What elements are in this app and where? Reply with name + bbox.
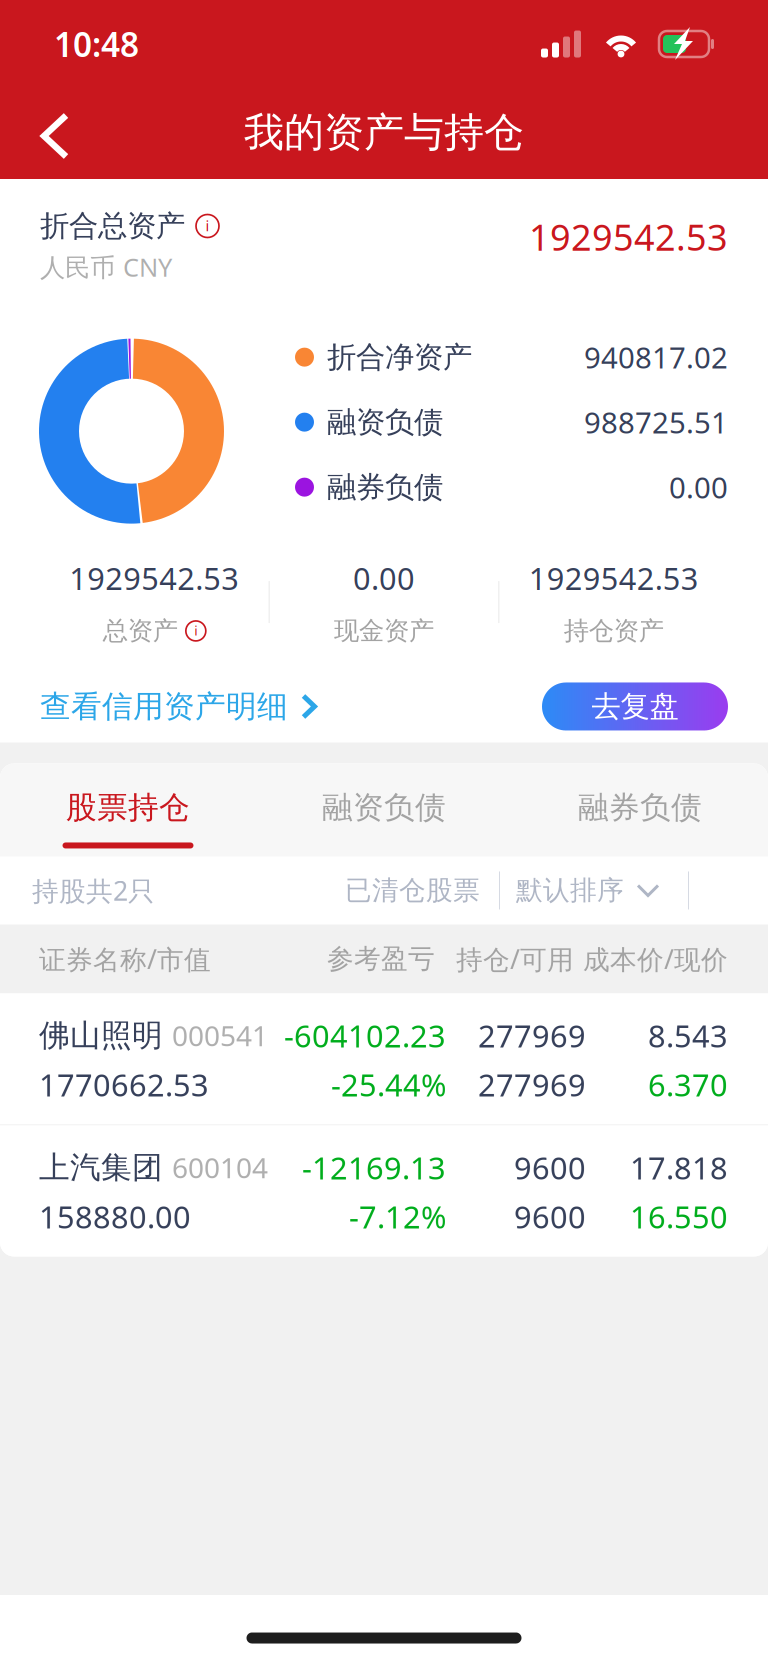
- staticText: 佛山照明: [39, 1017, 163, 1054]
- staticText: 成本价/现价: [583, 941, 728, 977]
- staticText: 折合总资产: [40, 208, 185, 244]
- button[interactable]: 查看信用资产明细: [40, 678, 317, 734]
- staticText: -25.44%: [331, 1064, 446, 1105]
- staticText: 0.00: [353, 558, 415, 598]
- staticText: 0.00: [669, 468, 728, 507]
- staticText: 1770662.53: [39, 1064, 209, 1105]
- staticText: i: [205, 216, 209, 235]
- staticText: 股票持仓: [66, 789, 190, 826]
- staticText: 000541: [172, 1017, 268, 1054]
- staticText: 10:48: [54, 22, 139, 66]
- staticText: 去复盘: [591, 688, 678, 724]
- staticText: 人民币 CNY: [40, 250, 172, 284]
- staticText: 总资产: [103, 615, 178, 646]
- staticText: 折合净资产: [327, 339, 472, 375]
- staticText: 158880.00: [39, 1196, 191, 1237]
- staticText: 融券负债: [327, 469, 443, 505]
- staticText: 277969: [478, 1064, 586, 1105]
- staticText: 1929542.53: [529, 213, 728, 261]
- staticText: 持仓资产: [564, 615, 664, 646]
- button[interactable]: 股票持仓: [0, 763, 256, 856]
- staticText: 现金资产: [334, 615, 434, 646]
- staticText: 1929542.53: [69, 558, 239, 598]
- staticText: 我的资产与持仓: [244, 108, 524, 157]
- staticText: 16.550: [630, 1196, 728, 1237]
- staticText: 默认排序: [516, 874, 624, 907]
- staticText: 17.818: [630, 1147, 728, 1188]
- staticText: 940817.02: [584, 338, 728, 377]
- button[interactable]: 去复盘: [542, 682, 728, 730]
- staticText: 上汽集团: [39, 1149, 163, 1186]
- button[interactable]: Back: [17, 99, 93, 173]
- staticText: 9600: [514, 1147, 586, 1188]
- staticText: 证券名称/市值: [39, 941, 211, 977]
- staticText: -12169.13: [302, 1147, 446, 1188]
- staticText: i: [194, 622, 197, 639]
- staticText: 6.370: [648, 1064, 728, 1105]
- button[interactable]: 融资负债: [256, 763, 512, 856]
- staticText: 600104: [172, 1149, 268, 1186]
- staticText: 查看信用资产明细: [40, 688, 288, 725]
- staticText: 已清仓股票: [345, 874, 480, 907]
- staticText: 融券负债: [578, 789, 702, 826]
- staticText: 9600: [514, 1196, 586, 1237]
- button[interactable]: 融券负债: [512, 763, 768, 856]
- staticText: 融资负债: [327, 404, 443, 440]
- staticText: 融资负债: [322, 789, 446, 826]
- staticText: 参考盈亏: [327, 943, 435, 975]
- button[interactable]: 默认排序: [516, 859, 660, 921]
- button[interactable]: 已清仓股票: [345, 859, 480, 921]
- staticText: 持仓/可用: [456, 941, 574, 977]
- staticText: -7.12%: [349, 1196, 446, 1237]
- button[interactable]: 上汽集团: [0, 1125, 768, 1256]
- staticText: 1929542.53: [529, 558, 699, 598]
- staticText: 988725.51: [584, 403, 728, 442]
- button[interactable]: 佛山照明: [0, 993, 768, 1124]
- staticText: 277969: [478, 1015, 586, 1056]
- staticText: 持股共2只: [32, 873, 155, 908]
- staticText: 8.543: [648, 1015, 728, 1056]
- staticText: -604102.23: [284, 1015, 446, 1056]
